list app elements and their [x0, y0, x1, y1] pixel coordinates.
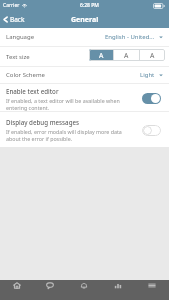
button[interactable]: Messages [33, 280, 67, 300]
button[interactable]: Switch off [142, 125, 161, 136]
staticText: Enable text editor [6, 87, 59, 95]
staticText: Text size [6, 53, 30, 61]
button[interactable]: Statistics [101, 280, 135, 300]
button[interactable]: A [89, 49, 113, 61]
staticText: A [124, 51, 129, 60]
staticText: Back [10, 15, 25, 24]
button[interactable]: Notifications [67, 280, 101, 300]
button[interactable]: Switch on [142, 93, 161, 104]
staticText: Carrier [3, 2, 20, 9]
button[interactable]: A [140, 49, 165, 61]
button[interactable]: Home [0, 280, 33, 300]
staticText: Language [6, 33, 35, 41]
staticText: If enabled, a text editor will be availa… [6, 97, 120, 111]
staticText: A [99, 51, 104, 60]
staticText: General [71, 15, 99, 25]
staticText: Display debug messages [6, 118, 80, 126]
staticText: If enabled, error modals will display mo… [6, 128, 122, 143]
button[interactable]: A [114, 49, 139, 61]
staticText: Color Scheme [6, 71, 45, 79]
staticText: 6:28 PM [80, 2, 99, 9]
button[interactable]: Back [0, 11, 31, 28]
button[interactable]: English - United... [105, 33, 163, 41]
staticText: Light [140, 71, 155, 79]
staticText: English - United... [105, 33, 155, 41]
button[interactable]: Menu [135, 280, 169, 300]
button[interactable]: Light [140, 71, 163, 79]
staticText: A [150, 51, 155, 60]
